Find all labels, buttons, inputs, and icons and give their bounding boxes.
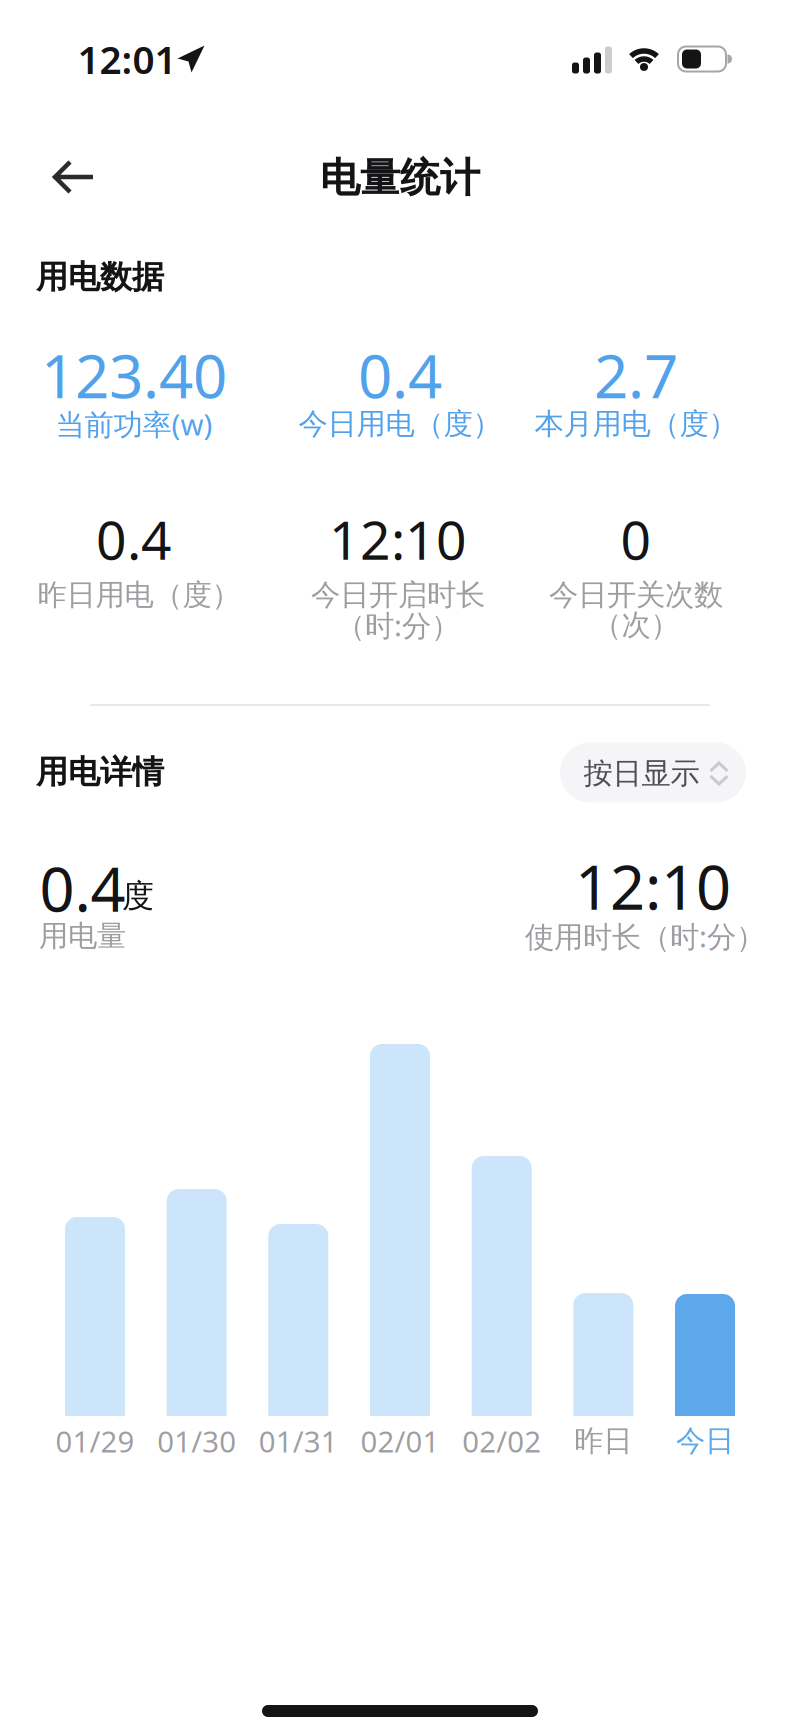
staticText: 本月用电（度） [534,406,737,442]
staticText: 今日开关次数 [549,577,723,613]
staticText: 当前功率(w) [55,404,212,443]
staticText: 用电数据 [36,257,164,297]
staticText: 12:10 [575,845,731,927]
staticText: （次） [592,607,679,643]
button[interactable]: 按日显示 [560,742,746,802]
staticText: 02/02 [462,1421,541,1460]
staticText: 度 [122,876,154,916]
staticText: 今日用电（度） [298,406,501,442]
staticText: 0.4 [358,335,442,415]
staticText: 123.40 [41,335,227,415]
staticText: 2.7 [594,335,678,415]
staticText: （时:分） [336,605,460,644]
staticText: 01/29 [55,1421,134,1460]
staticText: 12:10 [329,504,467,574]
staticText: 0.4 [96,504,172,574]
staticText: 按日显示 [583,755,699,791]
button[interactable]: Back [53,161,95,193]
staticText: 0.4 [39,847,125,929]
staticText: 01/31 [259,1421,338,1460]
staticText: 电量统计 [320,153,480,202]
staticText: 用电详情 [36,752,164,792]
staticText: 0 [620,504,651,574]
staticText: 今日 [676,1423,734,1459]
staticText: 昨日用电（度） [37,577,240,613]
staticText: 用电量 [39,918,126,954]
staticText: 12:01 [77,33,176,85]
staticText: 昨日 [574,1423,632,1459]
staticText: 02/01 [360,1421,439,1460]
staticText: 使用时长（时:分） [525,916,765,955]
staticText: 今日开启时长 [311,577,485,613]
staticText: 01/30 [157,1421,236,1460]
